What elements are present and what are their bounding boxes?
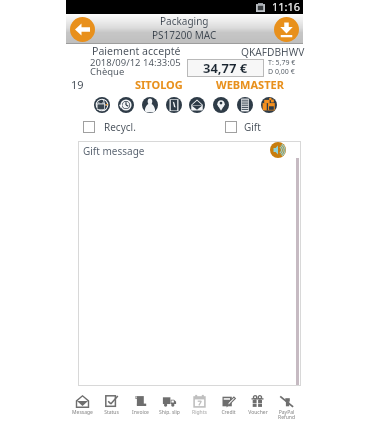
staticText: SITOLOG [135,77,183,92]
button[interactable]: List [237,97,253,113]
button[interactable]: Voucher [243,394,272,416]
staticText: Invoice [132,409,149,416]
button[interactable]: Ship. slip [155,394,184,416]
staticText: Chèque [90,65,125,78]
staticText: Credit [221,409,236,416]
staticText: Ship. slip [159,409,180,416]
staticText: 19 [71,77,84,92]
staticText: Gift [244,120,261,134]
button[interactable]: Download [274,17,299,42]
staticText: 11:16 [272,0,301,13]
staticText: D 0,00 € [268,67,295,77]
staticText: 2018/09/12 14:33:05 [90,56,181,69]
staticText: Packaging [160,14,209,28]
staticText: Paiement accepté [92,44,181,58]
staticText: Voucher [248,409,268,416]
staticText: Status [104,409,119,416]
button[interactable]: Message [68,394,97,416]
staticText: Message [72,409,93,416]
button[interactable]: Gift [225,120,261,134]
staticText: 34,77 € [203,59,248,77]
button[interactable]: Location [213,97,229,113]
staticText: Gift message [83,144,145,158]
button[interactable]: Mail [189,97,205,113]
staticText: QKAFDBHWV [241,45,305,59]
button[interactable]: Rights [185,394,214,416]
staticText: Recycl. [104,120,136,134]
button[interactable]: Invoice [126,394,155,416]
staticText: PS17200 MAC [152,28,217,42]
staticText: WEBMASTER [216,77,284,92]
button[interactable]: PayPal Refund [272,394,301,420]
button[interactable]: Customer [142,97,158,113]
button[interactable]: Print [261,97,277,113]
button[interactable]: Recycl. [83,120,136,134]
button[interactable]: History [118,97,134,113]
button[interactable]: Status [97,394,126,416]
button[interactable]: Play message [270,142,286,158]
staticText: PayPal Refund [278,409,295,420]
staticText: T: 5,79 € [268,58,296,68]
button[interactable]: Package [94,97,110,113]
button[interactable]: Back [70,17,95,42]
button[interactable]: Document [166,97,182,113]
staticText: Rights [192,409,207,416]
button[interactable]: Credit [214,394,243,416]
